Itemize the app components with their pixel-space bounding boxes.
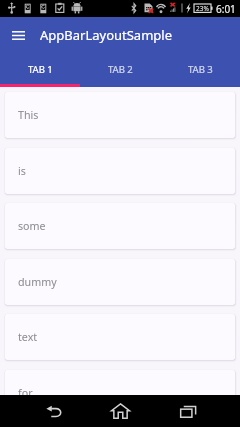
button[interactable]: for (5, 370, 235, 395)
button[interactable]: TAB 1 (0, 53, 80, 84)
button[interactable]: some (5, 203, 235, 249)
staticText: 23% (196, 4, 209, 13)
staticText: TAB 2 (108, 63, 133, 76)
button[interactable]: TAB 2 (80, 53, 160, 84)
staticText: This (18, 108, 39, 123)
button[interactable]: Home (104, 395, 136, 427)
staticText: dummy (18, 275, 57, 290)
staticText: TAB 3 (188, 63, 213, 76)
staticText: is (18, 164, 26, 179)
button[interactable]: This (5, 92, 235, 138)
button[interactable]: Back (38, 395, 70, 427)
button[interactable]: text (5, 314, 235, 360)
staticText: TAB 1 (28, 63, 53, 76)
button[interactable]: dummy (5, 259, 235, 305)
button[interactable]: Recent apps (172, 395, 204, 427)
staticText: 6:01 (216, 2, 236, 16)
button[interactable]: TAB 3 (160, 53, 240, 84)
button[interactable]: Open navigation menu (0, 17, 37, 53)
staticText: text (18, 330, 38, 345)
button[interactable]: is (5, 148, 235, 194)
staticText: AppBarLayoutSample (40, 26, 173, 44)
staticText: some (18, 219, 46, 234)
staticText: for (18, 386, 33, 395)
